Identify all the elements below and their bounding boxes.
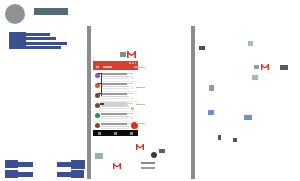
button[interactable] (93, 91, 138, 101)
button[interactable] (93, 111, 138, 121)
button[interactable]: Profile (5, 4, 25, 24)
button[interactable]: Compose (131, 122, 138, 129)
button[interactable] (93, 101, 138, 111)
button[interactable]: Search (134, 66, 137, 68)
button[interactable] (93, 121, 138, 131)
button[interactable] (93, 81, 138, 91)
button[interactable] (93, 71, 138, 81)
